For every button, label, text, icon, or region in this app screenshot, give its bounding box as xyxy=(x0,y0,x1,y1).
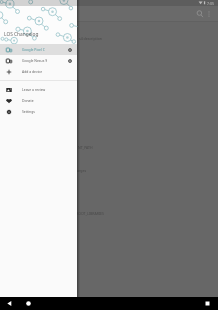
staticText: s4 description xyxy=(79,36,103,41)
button[interactable]: Recent apps xyxy=(202,298,213,309)
staticText: 7:05 xyxy=(207,1,215,6)
staticText: Settings xyxy=(22,109,35,114)
button[interactable]: Device settings xyxy=(67,47,73,53)
staticText: NT_PATH xyxy=(78,145,93,150)
button[interactable]: Device settings xyxy=(67,58,73,64)
button[interactable]: Google Pixel C xyxy=(0,44,77,55)
button[interactable]: Home xyxy=(23,298,34,309)
button[interactable]: Leave a review xyxy=(0,84,77,95)
button[interactable]: Back xyxy=(4,298,15,309)
button[interactable]: Search xyxy=(194,8,206,20)
staticText: Google Nexus 9 xyxy=(22,58,48,63)
staticText: Google Pixel C xyxy=(22,47,45,52)
staticText: Leave a review xyxy=(22,87,46,92)
button[interactable]: Settings xyxy=(0,106,77,117)
button[interactable]: Donate xyxy=(0,95,77,106)
button[interactable]: Google Nexus 9 xyxy=(0,55,77,66)
button[interactable]: Add a device xyxy=(0,66,77,77)
staticText: Donate xyxy=(22,98,34,103)
staticText: Add a device xyxy=(22,69,43,74)
staticText: LOS Changelog xyxy=(4,31,39,38)
staticText: ROOT_LIBRARIES xyxy=(76,211,104,216)
staticText: arges xyxy=(77,168,87,173)
